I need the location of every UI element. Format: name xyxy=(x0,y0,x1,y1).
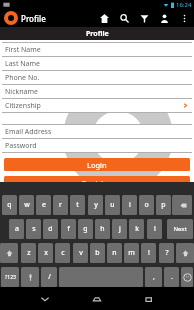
button[interactable]: ! xyxy=(141,243,156,263)
button[interactable]: ?123 xyxy=(1,267,19,287)
staticText: l xyxy=(154,224,156,234)
staticText: Profile xyxy=(21,13,46,24)
staticText: s xyxy=(32,224,36,234)
staticText: o xyxy=(144,200,149,210)
staticText: g xyxy=(83,224,88,234)
button[interactable]: b xyxy=(90,243,105,263)
staticText: . xyxy=(171,272,173,282)
button[interactable]: m xyxy=(124,243,139,263)
button[interactable]: t xyxy=(70,195,85,215)
staticText: r xyxy=(59,200,62,210)
button[interactable]: w xyxy=(19,195,34,215)
button[interactable]: g xyxy=(78,219,93,239)
button[interactable]: Next xyxy=(167,219,193,239)
button[interactable]: c xyxy=(55,243,70,263)
button[interactable]: Filter xyxy=(134,9,154,27)
staticText: d xyxy=(48,224,53,234)
button[interactable]: key xyxy=(0,243,18,263)
button[interactable]: Search xyxy=(114,9,134,27)
button[interactable]: l xyxy=(147,219,162,239)
button[interactable]: key xyxy=(21,267,39,287)
staticText: Citizenship xyxy=(5,101,41,111)
button[interactable]: Home xyxy=(85,287,109,310)
button[interactable]: e xyxy=(36,195,51,215)
button[interactable]: Citizenship xyxy=(2,99,192,112)
staticText: a xyxy=(15,224,19,234)
staticText: ? xyxy=(165,248,169,258)
button[interactable]: Phone No. xyxy=(2,71,192,84)
button[interactable]: Home xyxy=(94,9,114,27)
button[interactable]: key xyxy=(181,267,193,287)
staticText: v xyxy=(79,248,83,258)
staticText: j xyxy=(119,224,121,234)
staticText: t xyxy=(76,200,79,210)
button[interactable]: u xyxy=(105,195,120,215)
staticText: First Name xyxy=(5,45,41,55)
staticText: p xyxy=(161,200,166,210)
button[interactable]: j xyxy=(112,219,127,239)
staticText: w xyxy=(24,200,30,210)
button[interactable]: Register xyxy=(4,176,190,189)
button[interactable]: More options xyxy=(174,9,194,27)
button[interactable]: Back xyxy=(33,287,57,310)
button[interactable]: q xyxy=(2,195,17,215)
staticText: Login xyxy=(87,160,107,170)
staticText: n xyxy=(112,248,117,258)
button[interactable]: z xyxy=(21,243,36,263)
button[interactable]: n xyxy=(107,243,122,263)
button[interactable]: , xyxy=(145,267,162,287)
button[interactable]: i xyxy=(122,195,137,215)
button[interactable]: / xyxy=(41,267,57,287)
button[interactable]: r xyxy=(53,195,68,215)
button[interactable]: Account xyxy=(154,9,174,27)
button[interactable]: o xyxy=(139,195,154,215)
button[interactable]: p xyxy=(156,195,171,215)
button[interactable]: ? xyxy=(159,243,174,263)
staticText: e xyxy=(42,200,46,210)
staticText: y xyxy=(94,200,98,210)
button[interactable]: Last Name xyxy=(2,57,192,70)
button[interactable]: key xyxy=(176,243,194,263)
staticText: / xyxy=(48,272,51,282)
staticText: Password xyxy=(5,141,37,151)
staticText: Next xyxy=(173,225,187,233)
staticText: Nickname xyxy=(5,87,38,97)
staticText: i xyxy=(129,200,131,210)
button[interactable]: h xyxy=(95,219,110,239)
staticText: x xyxy=(44,248,48,258)
button[interactable]: d xyxy=(43,219,58,239)
staticText: q xyxy=(7,200,12,210)
button[interactable]: y xyxy=(88,195,103,215)
button[interactable]: key xyxy=(172,195,192,215)
staticText: c xyxy=(61,248,65,258)
staticText: , xyxy=(153,272,155,282)
button[interactable]: v xyxy=(73,243,88,263)
staticText: Last Name xyxy=(5,59,41,69)
staticText: Register xyxy=(82,178,112,188)
button[interactable]: Login xyxy=(4,158,190,171)
button[interactable]: s xyxy=(26,219,41,239)
staticText: f xyxy=(67,224,70,234)
staticText: b xyxy=(95,248,100,258)
button[interactable]: x xyxy=(38,243,53,263)
button[interactable]: Recents xyxy=(137,287,161,310)
staticText: m xyxy=(128,248,135,258)
button[interactable]: k xyxy=(129,219,144,239)
button[interactable]: Email Address xyxy=(2,125,192,138)
button[interactable]: Password xyxy=(2,139,192,152)
staticText: k xyxy=(135,224,139,234)
staticText: Phone No. xyxy=(5,73,40,83)
staticText: z xyxy=(27,248,31,258)
button[interactable]: First Name xyxy=(2,43,192,56)
staticText: 16:24 xyxy=(176,1,192,9)
button[interactable]: f xyxy=(61,219,76,239)
staticText: ?123 xyxy=(5,274,16,281)
button[interactable]: Nickname xyxy=(2,85,192,98)
staticText: ! xyxy=(148,248,150,258)
staticText: h xyxy=(100,224,105,234)
staticText: u xyxy=(110,200,115,210)
button[interactable]: a xyxy=(9,219,24,239)
button[interactable]: . xyxy=(164,267,179,287)
staticText: Profile xyxy=(86,29,109,39)
